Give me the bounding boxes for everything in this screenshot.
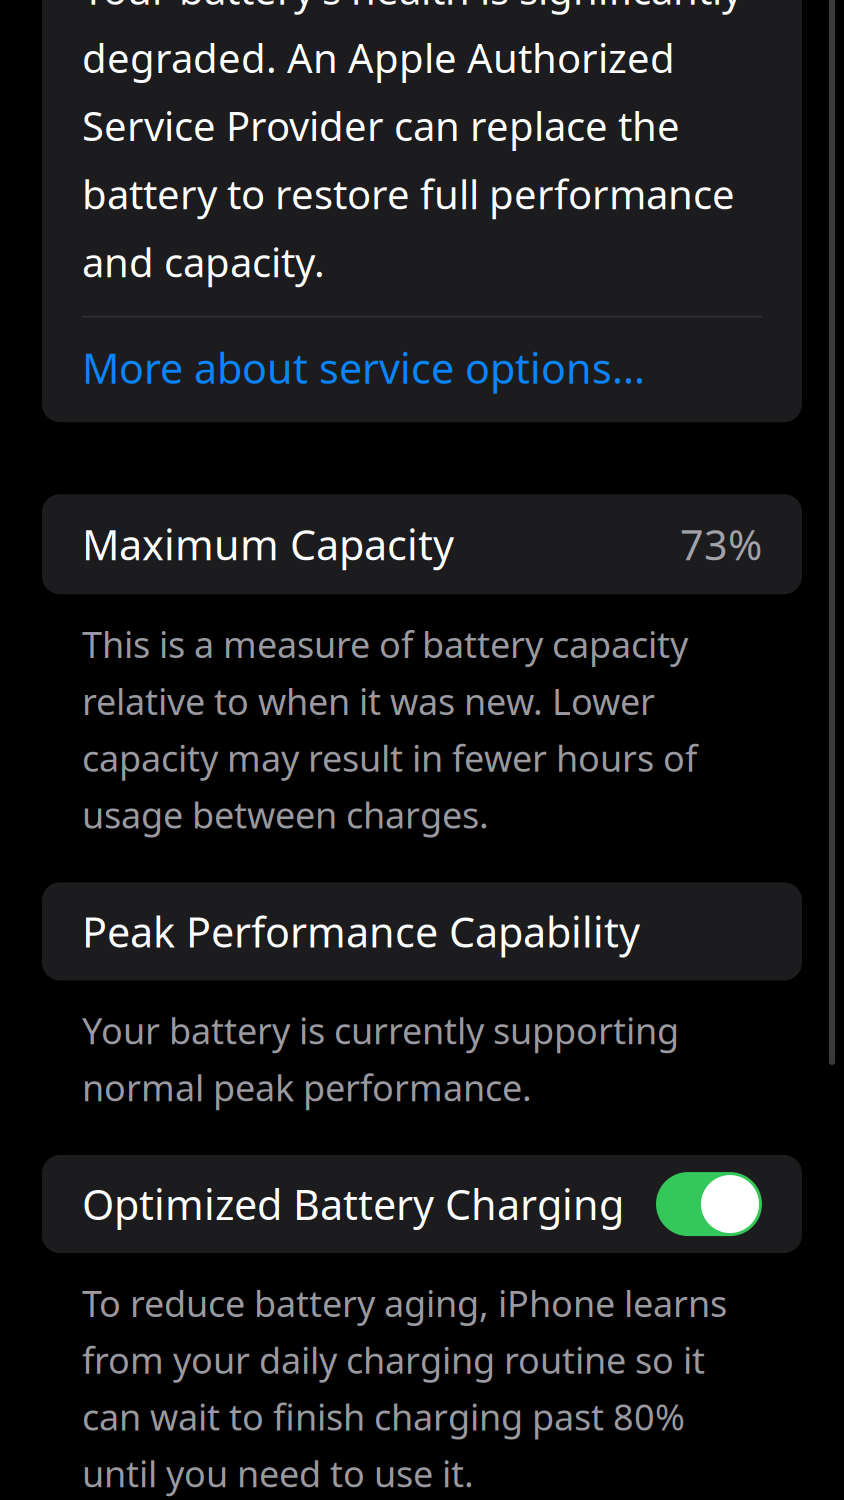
staticText: This is a measure of battery capacity re… xyxy=(82,620,697,838)
staticText: 73% xyxy=(680,517,762,572)
staticText: To reduce battery aging, iPhone learns f… xyxy=(82,1279,727,1497)
button[interactable]: Optimized Battery Charging xyxy=(42,1155,802,1253)
staticText: Optimized Battery Charging xyxy=(82,1177,624,1231)
staticText: Peak Performance Capability xyxy=(82,904,640,959)
button[interactable]: Maximum Capacity xyxy=(42,494,802,594)
button[interactable]: Peak Performance Capability xyxy=(42,882,802,980)
button[interactable]: More about service options... xyxy=(82,317,762,418)
staticText: Your battery is currently supporting nor… xyxy=(82,1006,679,1111)
staticText: Maximum Capacity xyxy=(82,517,454,572)
staticText: Your battery’s health is significantly d… xyxy=(82,0,742,288)
staticText: More about service options... xyxy=(82,340,645,395)
